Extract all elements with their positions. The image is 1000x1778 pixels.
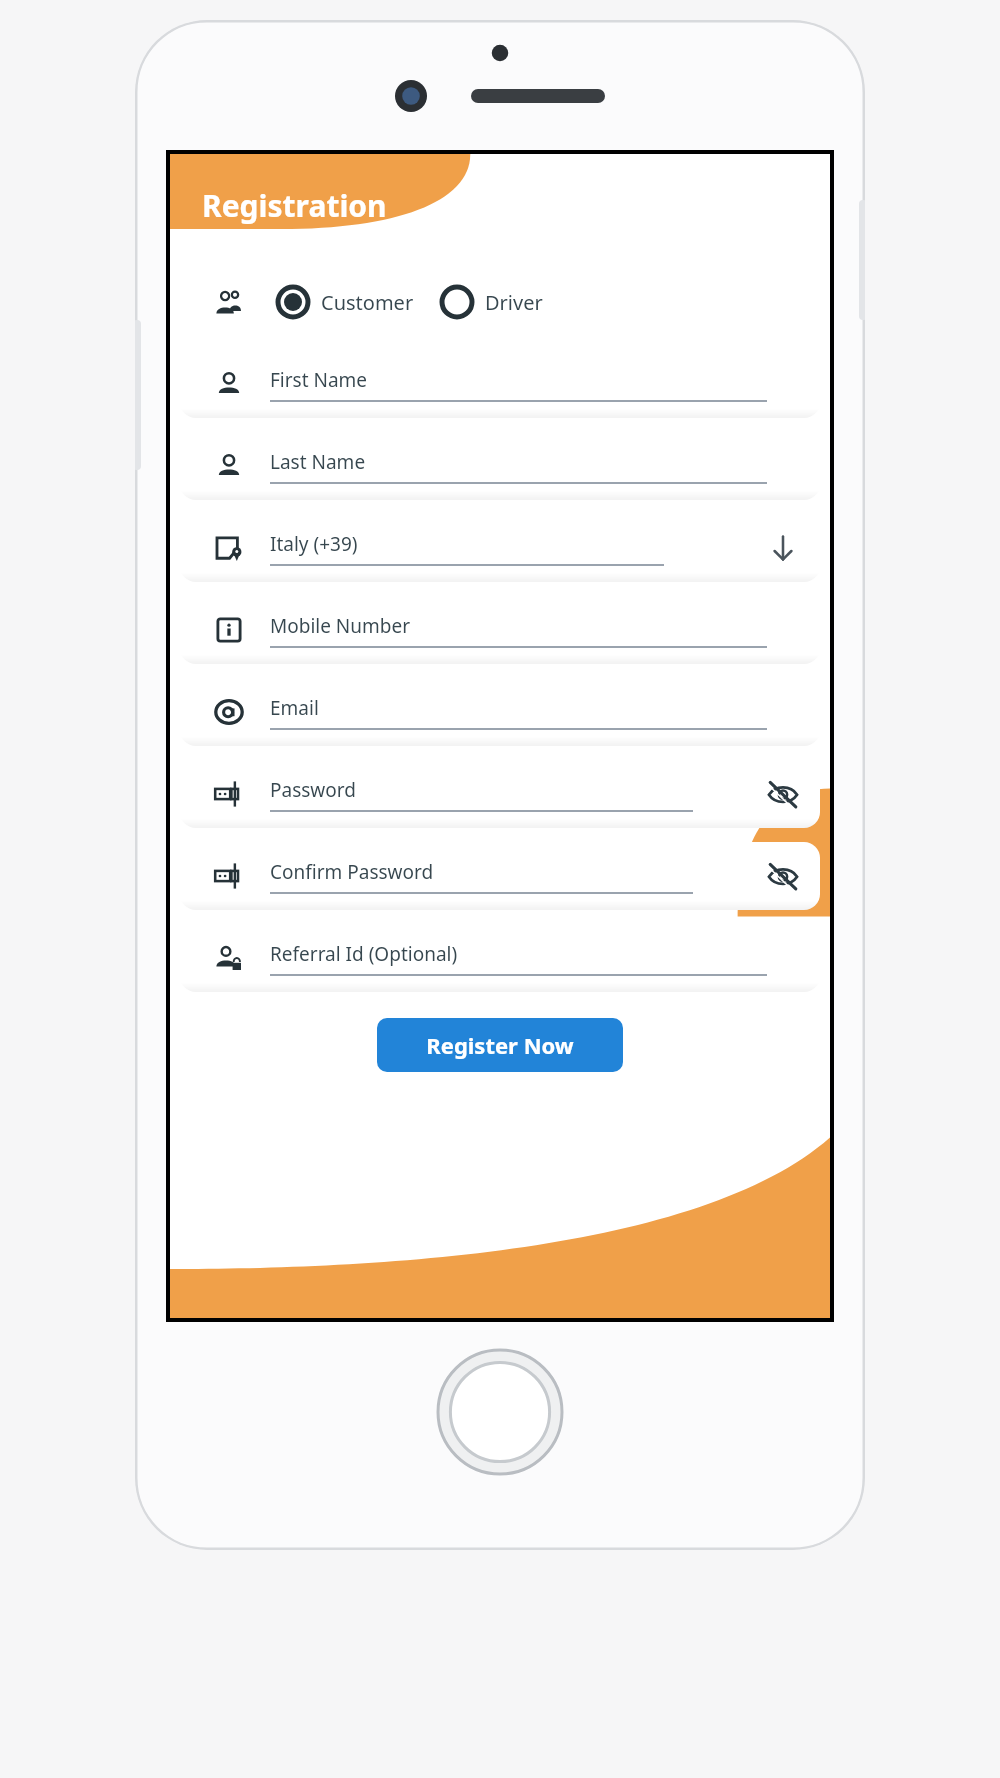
button[interactable]: Password xyxy=(180,760,820,828)
button[interactable]: Confirm Password xyxy=(180,842,820,910)
staticText: Email xyxy=(270,695,319,721)
staticText: Password xyxy=(270,777,356,803)
staticText: Registration xyxy=(202,185,387,226)
button[interactable]: Toggle password visibility xyxy=(762,855,804,897)
button[interactable]: Customer xyxy=(180,268,820,336)
button[interactable]: Last Name xyxy=(180,432,820,500)
staticText: Last Name xyxy=(270,449,366,475)
button[interactable]: First Name xyxy=(180,350,820,418)
staticText: Register Now xyxy=(426,1030,574,1060)
button[interactable]: Register Now xyxy=(377,1018,623,1072)
button[interactable]: Email xyxy=(180,678,820,746)
staticText: Referral Id (Optional) xyxy=(270,941,458,967)
staticText: Italy (+39) xyxy=(270,531,358,557)
button[interactable]: Italy (+39) xyxy=(180,514,820,582)
button[interactable]: Mobile Number xyxy=(180,596,820,664)
staticText: Mobile Number xyxy=(270,613,411,639)
staticText: Confirm Password xyxy=(270,859,434,885)
button[interactable]: Customer xyxy=(274,285,416,319)
button[interactable]: Driver xyxy=(438,285,545,319)
button[interactable]: Toggle password visibility xyxy=(762,773,804,815)
staticText: Driver xyxy=(485,289,543,316)
staticText: Customer xyxy=(321,289,414,316)
staticText: First Name xyxy=(270,367,368,393)
button[interactable]: Referral Id (Optional) xyxy=(180,924,820,992)
button[interactable]: Select country code xyxy=(762,527,804,569)
